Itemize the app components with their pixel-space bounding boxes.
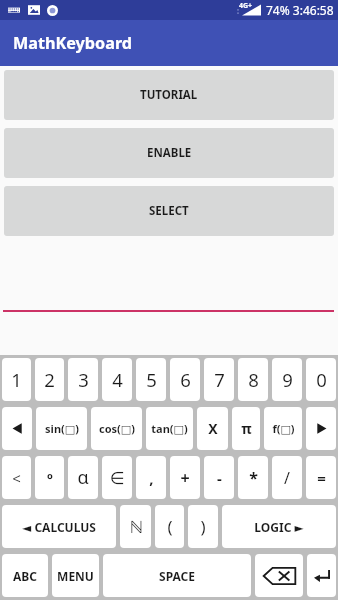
staticText: sin(□) — [45, 421, 79, 436]
staticText: ( — [167, 515, 173, 538]
staticText: ◄ CALCULUS — [22, 519, 96, 535]
staticText: , — [149, 468, 154, 488]
staticText: ∈ — [110, 468, 125, 488]
button[interactable]: TUTORIAL — [4, 70, 334, 120]
button[interactable]: π — [232, 407, 260, 450]
button[interactable]: Enter — [307, 554, 336, 597]
button[interactable]: 7 — [204, 358, 234, 401]
other: Move left — [11, 422, 24, 435]
button[interactable]: 1 — [2, 358, 31, 401]
button[interactable]: Move right — [306, 407, 336, 450]
button[interactable]: ENABLE — [4, 128, 334, 178]
staticText: cos(□) — [99, 421, 135, 436]
button[interactable]: < — [2, 456, 31, 499]
staticText: MathKeyboard — [13, 32, 133, 54]
button[interactable]: * — [238, 456, 268, 499]
staticText: = — [317, 468, 326, 488]
staticText: 3 — [78, 367, 89, 392]
staticText: 1 — [11, 367, 22, 392]
button[interactable]: 3 — [68, 358, 98, 401]
button[interactable]: X — [197, 407, 228, 450]
staticText: X — [208, 419, 218, 438]
other: Backspace — [263, 567, 296, 585]
staticText: α — [77, 465, 89, 490]
staticText: ) — [200, 515, 206, 538]
staticText: LOGIC ► — [254, 519, 304, 535]
staticText: 7 — [214, 367, 225, 392]
staticText: º — [47, 468, 53, 488]
staticText: f(□) — [272, 421, 295, 436]
button[interactable]: º — [35, 456, 64, 499]
staticText: 5 — [146, 367, 157, 392]
button[interactable]: MENU — [52, 554, 99, 597]
staticText: SELECT — [149, 203, 189, 219]
button[interactable]: ) — [188, 505, 218, 548]
staticText: 74% 3:46:58 — [266, 2, 334, 18]
button[interactable]: - — [204, 456, 234, 499]
button[interactable]: ABC — [2, 554, 48, 597]
staticText: 4 — [112, 367, 123, 392]
button[interactable]: 6 — [170, 358, 200, 401]
other: Enter — [314, 570, 330, 582]
button[interactable]: cos(□) — [91, 407, 142, 450]
button[interactable]: ∈ — [102, 456, 132, 499]
button[interactable]: 9 — [272, 358, 302, 401]
staticText: - — [217, 468, 222, 488]
button[interactable]: + — [170, 456, 200, 499]
staticText: tan(□) — [151, 421, 188, 436]
staticText: MENU — [57, 568, 94, 584]
staticText: / — [284, 467, 290, 489]
staticText: SPACE — [159, 568, 195, 584]
button[interactable]: ◄ CALCULUS — [2, 505, 116, 548]
staticText: * — [249, 467, 258, 489]
button[interactable]: , — [136, 456, 166, 499]
staticText: 2 — [44, 367, 55, 392]
other: Move right — [315, 422, 328, 435]
staticText: ABC — [13, 568, 37, 584]
button[interactable]: Move left — [2, 407, 32, 450]
button[interactable]: Backspace — [255, 554, 303, 597]
button[interactable]: ( — [155, 505, 184, 548]
button[interactable]: f(□) — [264, 407, 302, 450]
button[interactable]: SELECT — [4, 186, 334, 236]
button[interactable]: sin(□) — [36, 407, 87, 450]
button[interactable]: 0 — [306, 358, 336, 401]
button[interactable]: 5 — [136, 358, 166, 401]
staticText: + — [180, 467, 190, 489]
button[interactable]: 4 — [102, 358, 132, 401]
button[interactable]: ℕ — [120, 505, 151, 548]
button[interactable]: 2 — [35, 358, 64, 401]
staticText: TUTORIAL — [140, 87, 198, 103]
staticText: 8 — [248, 367, 259, 392]
staticText: 6 — [180, 367, 191, 392]
button[interactable]: / — [272, 456, 302, 499]
staticText: ENABLE — [147, 145, 192, 161]
staticText: 9 — [282, 367, 293, 392]
staticText: 0 — [316, 367, 327, 392]
staticText: 4G+ — [239, 1, 253, 11]
button[interactable]: = — [306, 456, 336, 499]
staticText: ℕ — [129, 515, 143, 538]
staticText: < — [12, 468, 21, 488]
button[interactable]: LOGIC ► — [222, 505, 336, 548]
button[interactable]: tan(□) — [146, 407, 193, 450]
button[interactable]: α — [68, 456, 98, 499]
button[interactable]: 8 — [238, 358, 268, 401]
button[interactable]: SPACE — [103, 554, 251, 597]
staticText: π — [241, 419, 252, 438]
